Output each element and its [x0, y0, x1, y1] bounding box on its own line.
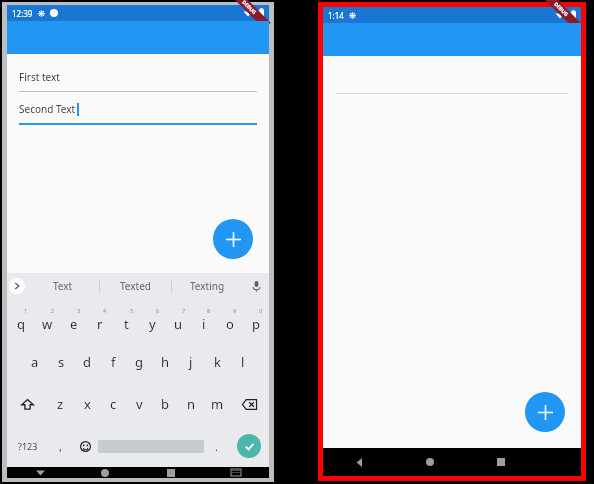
staticText: n: [187, 395, 196, 413]
staticText: g: [135, 353, 143, 371]
staticText: b: [161, 395, 169, 413]
staticText: u: [174, 315, 183, 333]
staticText: s: [58, 353, 65, 371]
staticText: Text: [53, 279, 73, 293]
staticText: 2: [51, 307, 55, 314]
staticText: Second Text: [19, 102, 76, 116]
button[interactable]: v: [126, 383, 152, 425]
button[interactable]: g: [126, 341, 152, 383]
button[interactable]: 2: [34, 299, 61, 341]
staticText: w: [42, 315, 53, 333]
staticText: 6: [156, 307, 160, 314]
button[interactable]: ?123: [7, 425, 48, 467]
button[interactable]: Texting: [172, 273, 243, 299]
button[interactable]: Recents: [158, 467, 184, 478]
button[interactable]: z: [47, 383, 74, 425]
staticText: 4: [103, 307, 107, 314]
staticText: i: [202, 315, 206, 333]
staticText: ?123: [18, 440, 38, 452]
staticText: q: [17, 315, 25, 333]
staticText: l: [241, 353, 245, 371]
staticText: 8: [207, 307, 211, 314]
button[interactable]: 4: [87, 299, 113, 341]
staticText: x: [84, 395, 91, 413]
staticText: c: [110, 395, 117, 413]
button[interactable]: Voice input: [243, 273, 269, 299]
button[interactable]: Back: [346, 449, 372, 475]
staticText: o: [226, 315, 234, 333]
button[interactable]: Add: [525, 392, 565, 432]
staticText: Texting: [190, 279, 225, 293]
button[interactable]: k: [204, 341, 230, 383]
button[interactable]: Shift: [7, 383, 47, 425]
button[interactable]: 6: [139, 299, 165, 341]
button[interactable]: Emoji: [73, 425, 98, 467]
staticText: 9: [233, 307, 237, 314]
button[interactable]: Texted: [100, 273, 171, 299]
staticText: d: [83, 353, 91, 371]
staticText: First text: [19, 70, 60, 84]
staticText: v: [136, 395, 143, 413]
staticText: ,: [59, 439, 62, 454]
button[interactable]: Back: [27, 467, 53, 478]
staticText: DEBUG: [552, 1, 570, 18]
staticText: z: [57, 395, 64, 413]
staticText: y: [149, 315, 156, 333]
staticText: r: [97, 315, 103, 333]
button[interactable]: Space: [98, 438, 204, 454]
button[interactable]: .: [204, 425, 229, 467]
staticText: 1: [24, 307, 28, 314]
button[interactable]: s: [48, 341, 74, 383]
button[interactable]: Expand: [7, 273, 27, 299]
staticText: k: [214, 353, 221, 371]
staticText: m: [211, 395, 224, 413]
staticText: 3: [77, 307, 81, 314]
staticText: a: [31, 353, 39, 371]
button[interactable]: Keyboard: [223, 467, 249, 478]
button[interactable]: Recents: [488, 449, 514, 475]
button[interactable]: 0: [243, 299, 269, 341]
staticText: j: [189, 353, 193, 371]
staticText: 0: [259, 307, 263, 314]
button[interactable]: a: [21, 341, 48, 383]
button[interactable]: 1: [7, 299, 34, 341]
staticText: 5: [130, 307, 134, 314]
button[interactable]: Backspace: [230, 383, 269, 425]
staticText: 12:39: [12, 8, 33, 19]
button[interactable]: Home: [92, 467, 118, 478]
button[interactable]: 8: [191, 299, 217, 341]
button[interactable]: ,: [48, 425, 73, 467]
staticText: h: [161, 353, 170, 371]
staticText: e: [70, 315, 78, 333]
button[interactable]: m: [204, 383, 230, 425]
button[interactable]: f: [100, 341, 126, 383]
button[interactable]: d: [74, 341, 100, 383]
staticText: Texted: [120, 279, 151, 293]
button[interactable]: b: [152, 383, 178, 425]
button[interactable]: Text: [27, 273, 99, 299]
button[interactable]: 7: [165, 299, 191, 341]
button[interactable]: h: [152, 341, 178, 383]
staticText: t: [124, 315, 129, 333]
button[interactable]: Add: [213, 219, 253, 259]
button[interactable]: x: [74, 383, 100, 425]
staticText: DEBUG: [240, 0, 258, 16]
staticText: 7: [182, 307, 186, 314]
button[interactable]: n: [178, 383, 204, 425]
button[interactable]: Enter: [229, 425, 269, 467]
staticText: 1:14: [328, 10, 344, 21]
button[interactable]: l: [230, 341, 256, 383]
staticText: f: [111, 353, 116, 371]
button[interactable]: c: [100, 383, 126, 425]
button[interactable]: 9: [217, 299, 243, 341]
staticText: .: [215, 439, 218, 454]
button[interactable]: 3: [61, 299, 87, 341]
button[interactable]: 5: [113, 299, 139, 341]
staticText: p: [252, 315, 260, 333]
button[interactable]: j: [178, 341, 204, 383]
button[interactable]: Home: [417, 449, 443, 475]
